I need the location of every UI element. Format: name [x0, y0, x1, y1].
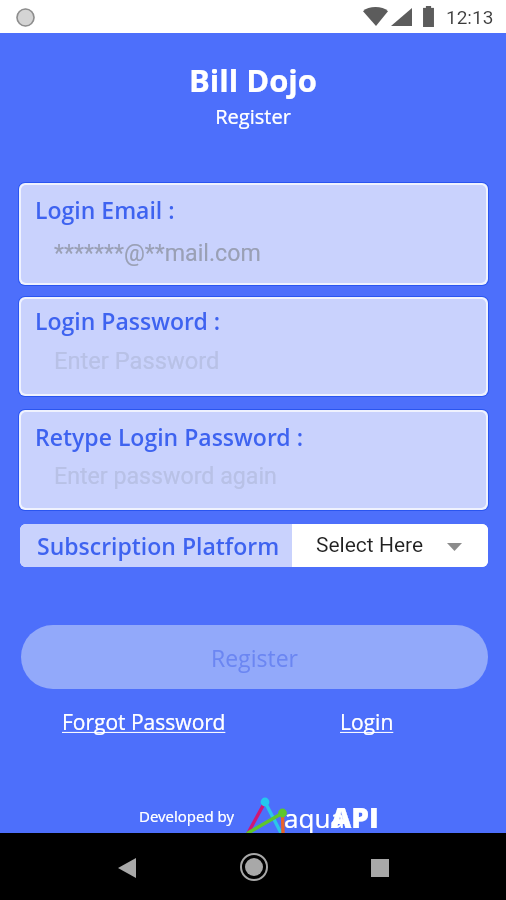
button[interactable]: Back: [101, 842, 153, 894]
staticText: *******@**mail.com: [54, 239, 261, 266]
staticText: Login Email :: [35, 194, 175, 225]
button[interactable]: Forgot Password: [62, 708, 226, 737]
staticText: Subscription Platform: [37, 530, 280, 561]
staticText: Enter Password: [54, 347, 220, 375]
button[interactable]: Select Here: [292, 524, 488, 567]
staticText: Retype Login Password :: [35, 421, 303, 452]
staticText: Forgot Password: [62, 708, 226, 737]
button[interactable]: Subscription Platform: [20, 524, 292, 567]
button[interactable]: Home: [228, 841, 280, 893]
button[interactable]: Login Email :: [21, 185, 486, 283]
staticText: Developed by: [139, 806, 234, 826]
staticText: 12:13: [446, 6, 494, 28]
button[interactable]: Register: [21, 625, 488, 689]
staticText: Login: [340, 708, 394, 737]
button[interactable]: Login Password :: [21, 299, 486, 394]
staticText: API: [331, 798, 379, 836]
staticText: Enter password again: [54, 462, 277, 489]
staticText: Register: [0, 103, 506, 130]
button[interactable]: Retype Login Password :: [21, 412, 486, 508]
staticText: Bill Dojo: [0, 59, 506, 101]
button[interactable]: Login: [340, 708, 394, 737]
staticText: Select Here: [316, 533, 424, 558]
staticText: Register: [211, 642, 298, 673]
staticText: Login Password :: [35, 305, 221, 336]
staticText: aqua: [284, 800, 345, 835]
button[interactable]: Recents: [354, 842, 406, 894]
